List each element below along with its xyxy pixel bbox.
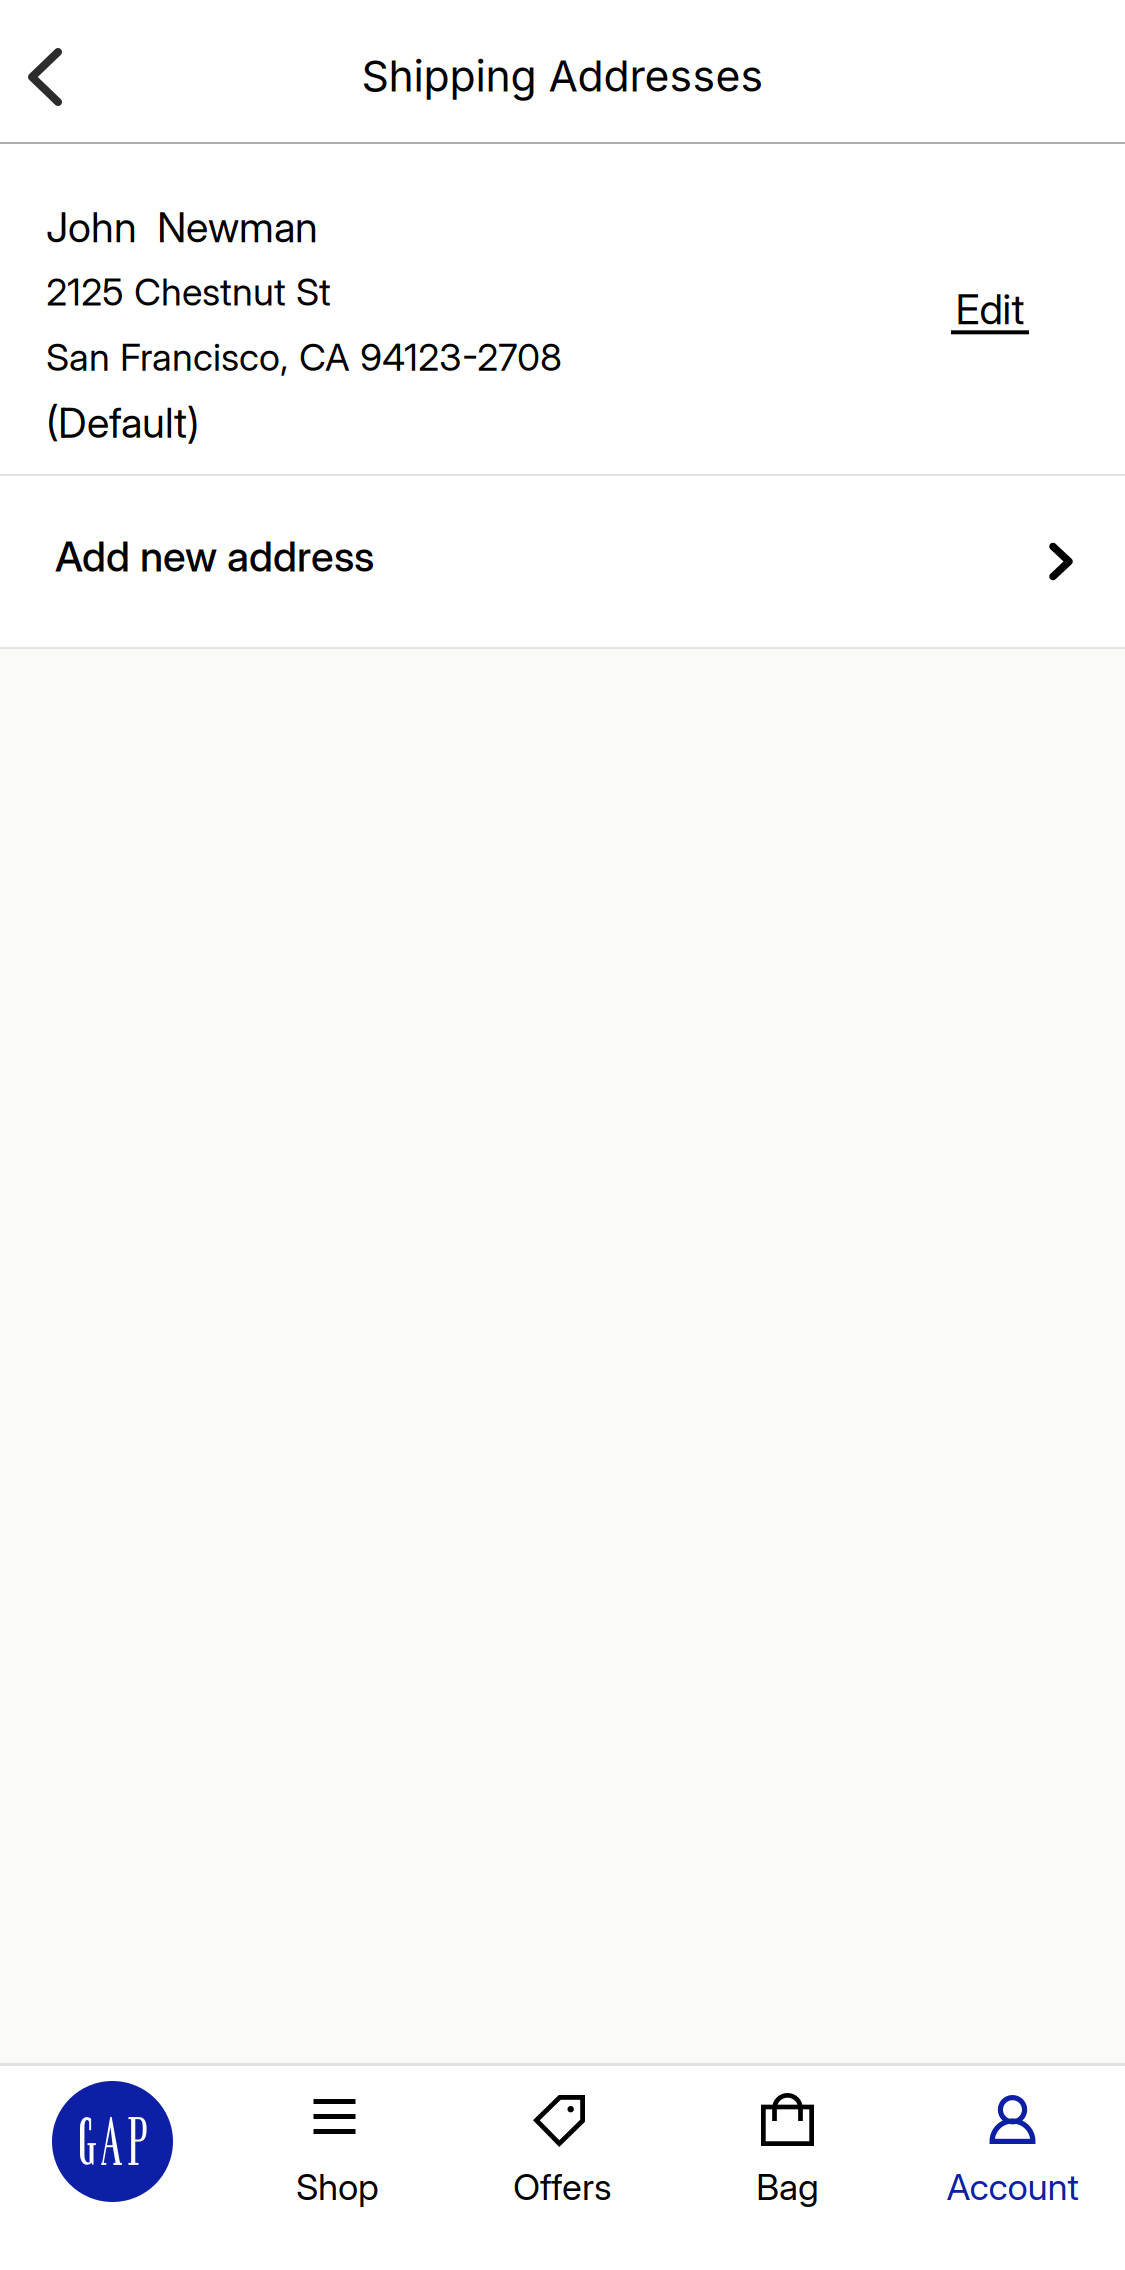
- staticText: Bag: [756, 2165, 819, 2209]
- staticText: Shop: [296, 2165, 379, 2209]
- button[interactable]: Offers: [450, 2066, 675, 2270]
- staticText: 2125 Chestnut St: [46, 269, 331, 314]
- staticText: Account: [946, 2165, 1078, 2209]
- button[interactable]: Back: [0, 0, 102, 142]
- staticText: Offers: [513, 2165, 612, 2209]
- staticText: San Francisco, CA 94123-2708: [46, 334, 562, 380]
- staticText: Shipping Addresses: [361, 50, 763, 102]
- button[interactable]: Account: [900, 2066, 1125, 2270]
- staticText: John Newman: [46, 202, 318, 252]
- button[interactable]: Add new address: [0, 476, 1125, 647]
- button[interactable]: Bag: [675, 2066, 900, 2270]
- button[interactable]: Edit: [929, 170, 1051, 366]
- staticText: Add new address: [55, 531, 374, 581]
- staticText: Edit: [955, 284, 1024, 334]
- button[interactable]: Shop: [225, 2066, 450, 2270]
- staticText: (Default): [46, 398, 199, 448]
- button[interactable]: Gap: [0, 2066, 225, 2270]
